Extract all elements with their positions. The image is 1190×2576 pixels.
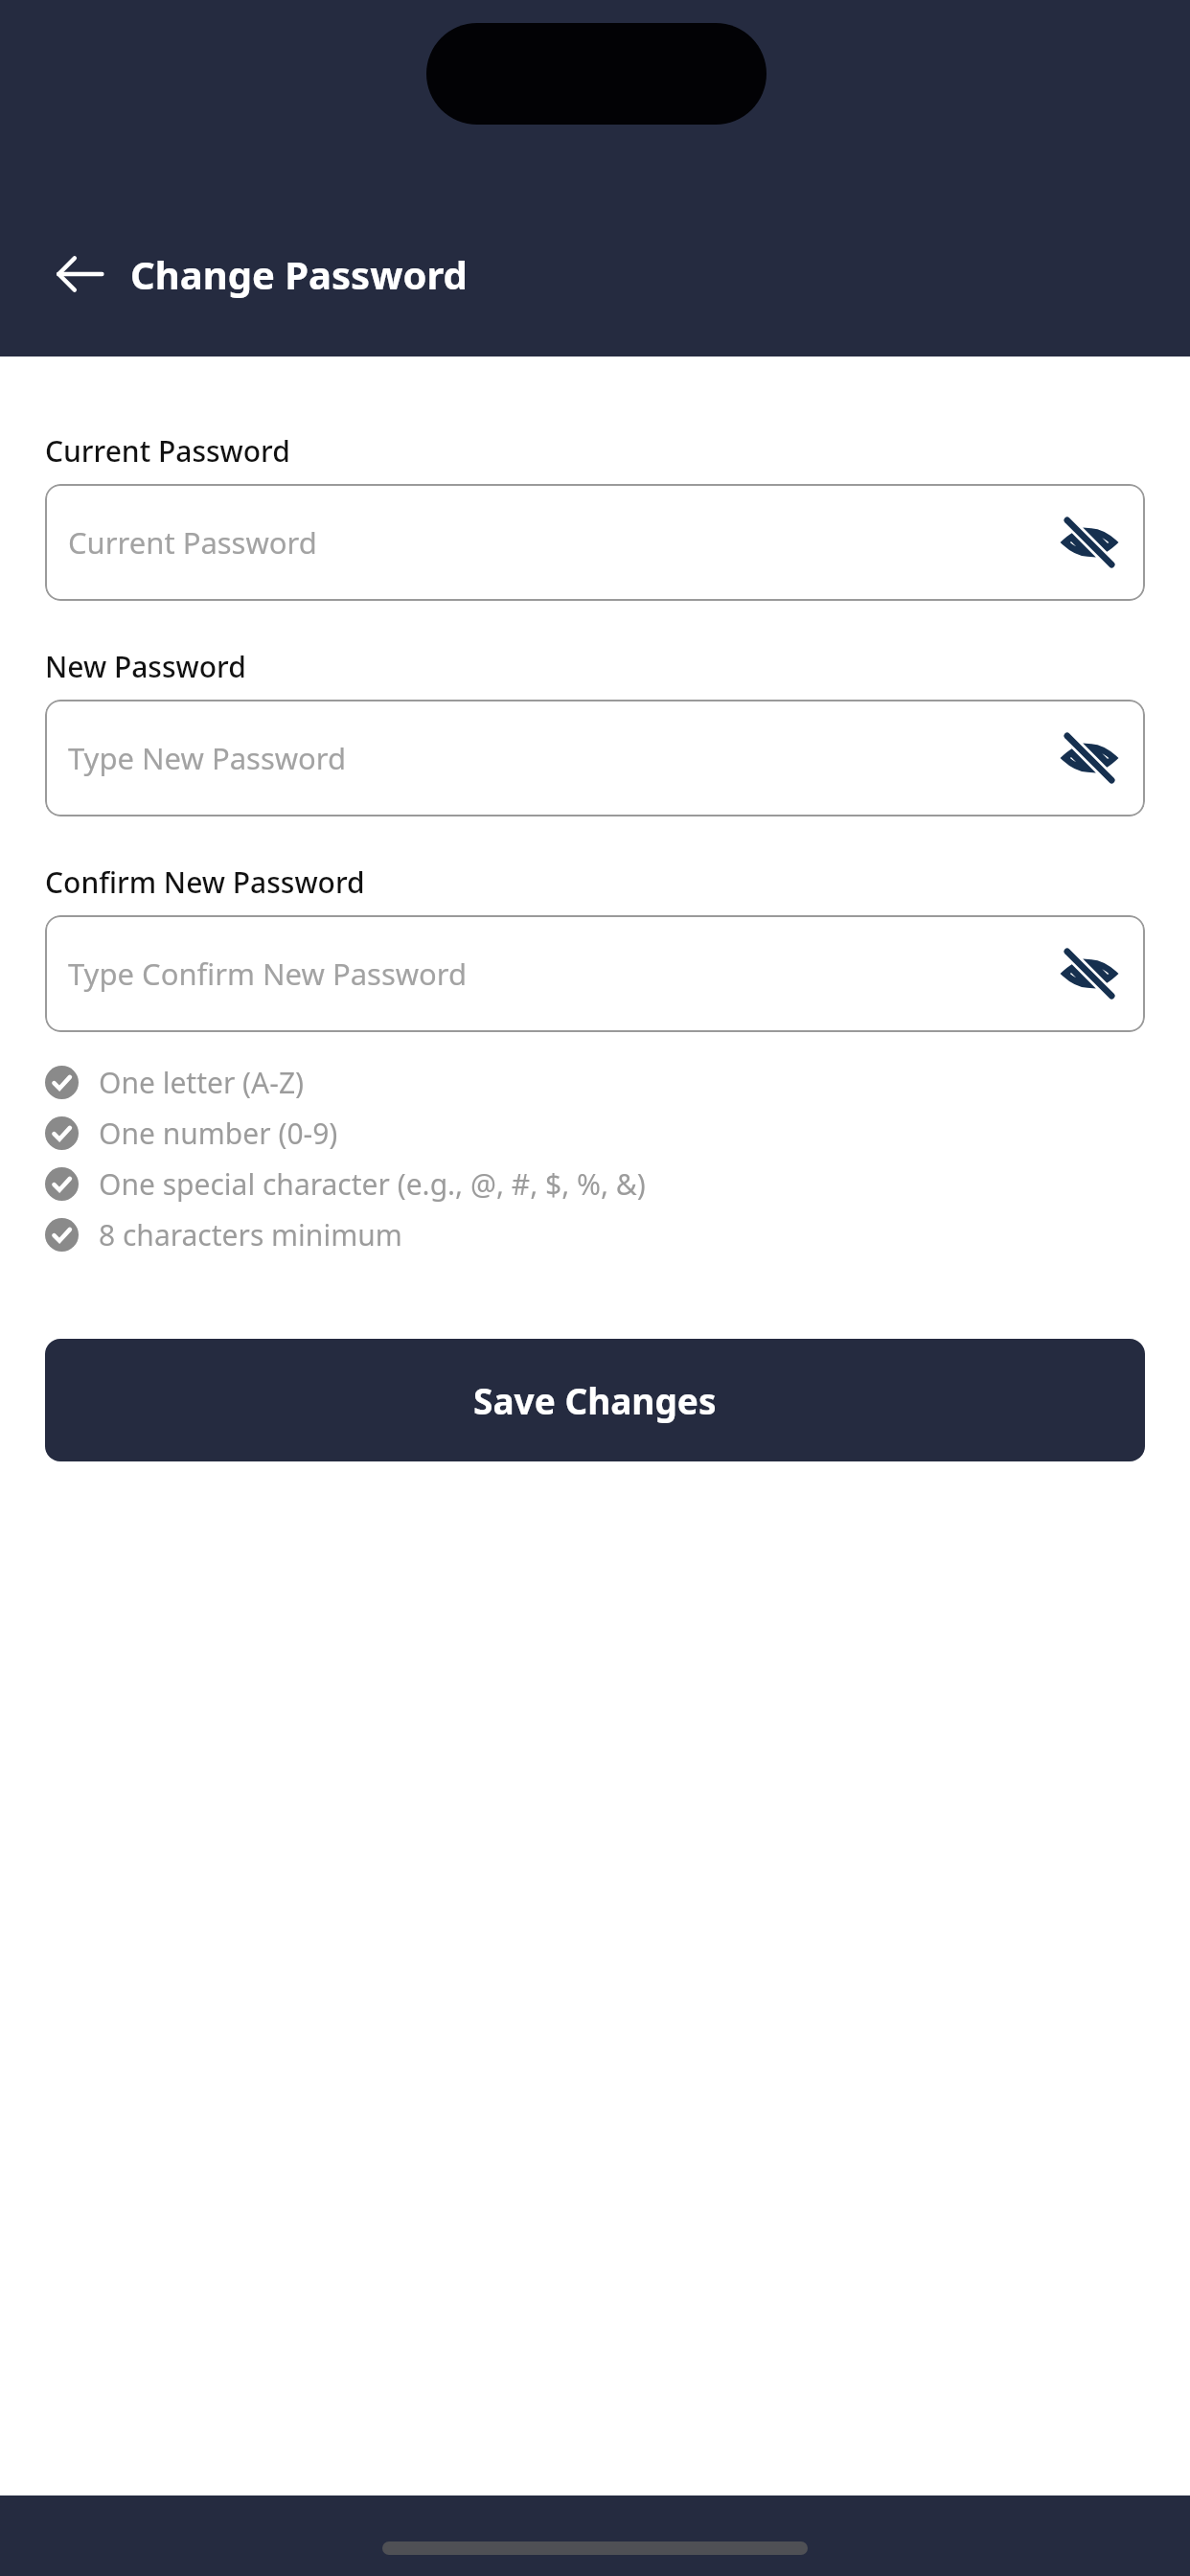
staticText: Type New Password: [68, 738, 1057, 778]
staticText: Change Password: [130, 248, 468, 300]
staticText: One special character (e.g., @, #, $, %,…: [99, 1164, 646, 1204]
staticText: One number (0-9): [99, 1114, 338, 1153]
button[interactable]: Save Changes: [45, 1339, 1145, 1461]
button[interactable]: Show password: [1057, 725, 1122, 791]
button[interactable]: Type Confirm New Password: [45, 915, 1145, 1032]
staticText: Current Password: [45, 431, 290, 471]
staticText: Save Changes: [473, 1376, 717, 1424]
staticText: 8 characters minimum: [99, 1215, 402, 1254]
button[interactable]: Back: [46, 241, 111, 307]
staticText: Confirm New Password: [45, 862, 365, 902]
button[interactable]: Show password: [1057, 941, 1122, 1006]
button[interactable]: Type New Password: [45, 700, 1145, 816]
button[interactable]: Current Password: [45, 484, 1145, 601]
staticText: One letter (A-Z): [99, 1063, 305, 1102]
staticText: Type Confirm New Password: [68, 954, 1057, 994]
staticText: Current Password: [68, 522, 1057, 563]
staticText: New Password: [45, 647, 246, 686]
button[interactable]: Show password: [1057, 510, 1122, 575]
